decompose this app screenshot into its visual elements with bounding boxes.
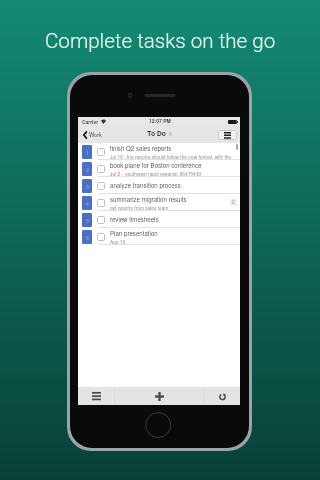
staticText: - southwest rapid rewards: 86475439 [121, 170, 201, 177]
staticText: Work [89, 131, 102, 139]
button[interactable]: 2 [78, 160, 240, 177]
staticText: Aug 10 [110, 238, 126, 245]
staticText: finish Q2 sales reports [110, 144, 172, 153]
staticText: Carrier [82, 118, 99, 125]
staticText: 1 [86, 149, 89, 156]
staticText: book plane for Boston conference [110, 161, 202, 170]
staticText: 3 [86, 183, 89, 190]
staticText: review timesheets [110, 215, 159, 224]
button[interactable]: 6 [78, 228, 240, 245]
staticText: Plan presentation [110, 229, 158, 238]
staticText: summarize migration results [110, 195, 187, 204]
staticText: 2 [232, 199, 235, 206]
button[interactable]: Work [78, 129, 106, 141]
button[interactable]: 5 [78, 211, 240, 228]
button[interactable]: 3 [78, 177, 240, 194]
button[interactable]: Menu [218, 130, 237, 140]
staticText: Jul 16 - the reports should follow the n… [110, 153, 237, 160]
staticText: get reports from sales team [110, 204, 169, 211]
staticText: analyze transition process [110, 181, 181, 190]
staticText: 6 [86, 234, 89, 241]
button[interactable]: Refresh [204, 387, 240, 405]
staticText: Complete tasks on the go [45, 29, 276, 53]
button[interactable]: Add task [115, 387, 203, 405]
staticText: Jul 2 [110, 170, 121, 177]
staticText: 6 [169, 131, 173, 138]
button[interactable]: List view [78, 387, 114, 405]
staticText: 2 [86, 166, 89, 173]
staticText: To Do [147, 129, 166, 138]
button[interactable]: 4 [78, 194, 240, 211]
staticText: 5 [86, 217, 89, 224]
staticText: 12:07 PM [149, 117, 171, 124]
staticText: 4 [86, 200, 89, 207]
button[interactable]: 1 [78, 143, 240, 160]
